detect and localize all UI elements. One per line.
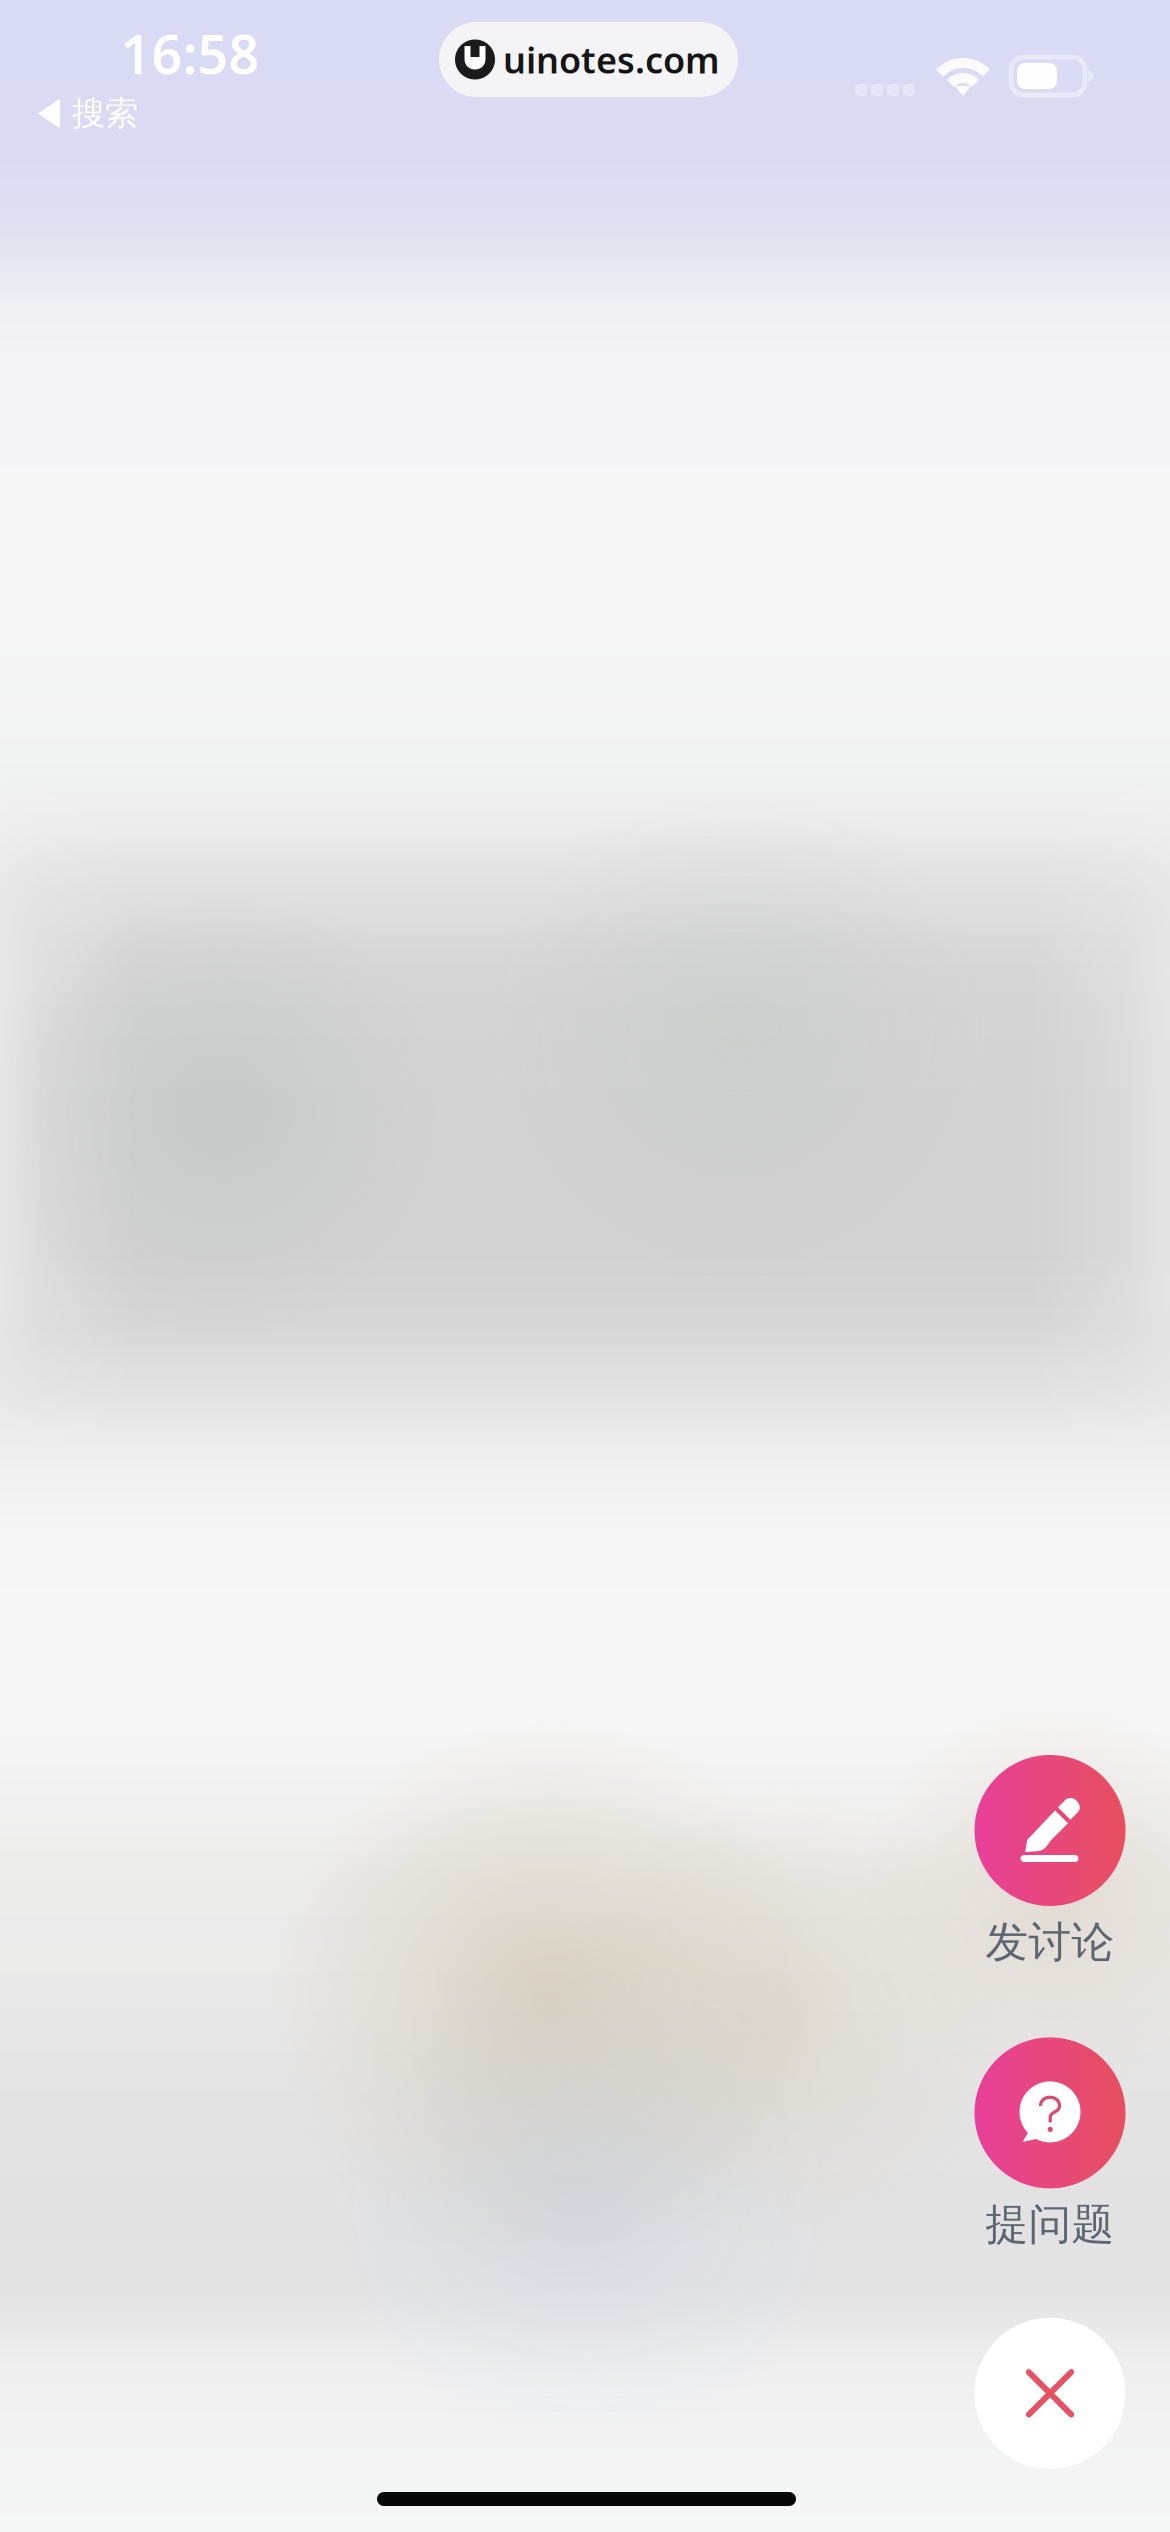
- button[interactable]: uinotes.com: [439, 22, 738, 97]
- staticText: 提问题: [985, 2198, 1114, 2251]
- staticText: 发讨论: [985, 1916, 1114, 1968]
- staticText: 16:58: [120, 18, 259, 89]
- button[interactable]: Close menu: [974, 2318, 1125, 2469]
- staticText: 搜索: [72, 93, 138, 134]
- button[interactable]: 搜索: [38, 93, 138, 134]
- button[interactable]: 发讨论: [974, 1755, 1125, 1968]
- staticText: uinotes.com: [503, 36, 720, 83]
- button[interactable]: 提问题: [974, 2037, 1125, 2251]
